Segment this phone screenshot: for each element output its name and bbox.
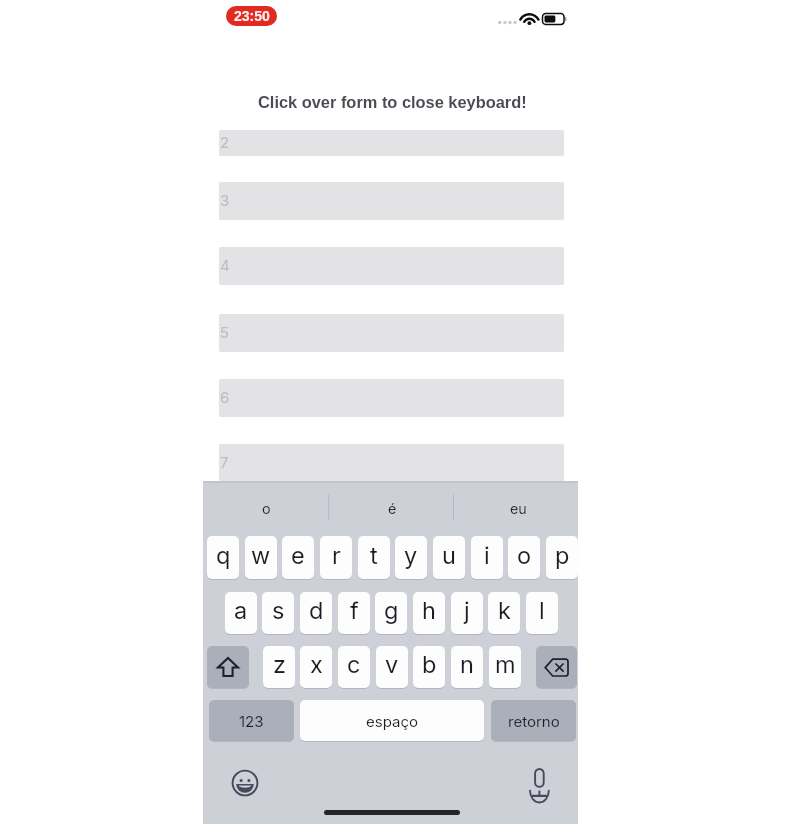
staticText: b [422,650,437,678]
button[interactable]: b [413,646,445,688]
staticText: y [404,541,418,569]
button[interactable]: q [207,536,239,579]
button[interactable]: Backspace [536,646,577,688]
button[interactable]: z [263,646,295,688]
button[interactable]: 123 [209,700,294,741]
staticText: w [251,541,271,569]
staticText: e [291,541,305,569]
button[interactable]: Time 23:50 [226,6,277,26]
staticText: f [350,596,359,624]
button[interactable]: Dictation [530,768,560,798]
button[interactable]: o [226,495,306,521]
button[interactable]: f [338,592,370,634]
button[interactable]: e [282,536,314,579]
staticText: u [442,541,456,569]
staticText: espaço [366,712,418,730]
staticText: i [484,541,490,569]
staticText: o [517,541,532,569]
staticText: é [388,500,397,517]
button[interactable]: j [451,592,483,634]
staticText: l [539,596,545,624]
staticText: n [460,650,474,678]
staticText: v [385,650,399,678]
staticText: retorno [508,712,560,730]
staticText: z [273,650,286,678]
staticText: 5 [220,323,229,341]
staticText: j [464,596,470,624]
button[interactable]: y [395,536,427,579]
button[interactable]: 7 [219,444,564,482]
button[interactable]: o [508,536,540,579]
staticText: k [498,596,511,624]
staticText: d [309,596,324,624]
button[interactable]: g [375,592,407,634]
button[interactable]: l [526,592,558,634]
button[interactable]: é [352,495,432,521]
staticText: Click over form to close keyboard! [258,93,527,111]
button[interactable]: a [225,592,257,634]
button[interactable]: w [245,536,277,579]
button[interactable]: v [376,646,408,688]
staticText: o [262,500,271,517]
staticText: 6 [220,388,230,406]
staticText: g [384,596,399,624]
staticText: 3 [220,191,230,209]
button[interactable]: t [358,536,390,579]
button[interactable]: p [546,536,578,579]
button[interactable]: m [489,646,521,688]
staticText: 4 [220,256,230,274]
staticText: h [422,596,436,624]
button[interactable]: x [300,646,332,688]
button[interactable]: c [338,646,370,688]
staticText: s [272,596,285,624]
button[interactable]: retorno [491,700,576,741]
button[interactable]: k [488,592,520,634]
staticText: 123 [239,712,264,730]
staticText: 7 [220,453,229,471]
staticText: 23:50 [234,8,270,24]
button[interactable]: n [451,646,483,688]
staticText: 2 [220,133,230,151]
button[interactable]: Emoji keyboard [230,768,260,798]
staticText: p [555,541,570,569]
button[interactable]: h [413,592,445,634]
button[interactable]: r [320,536,352,579]
staticText: x [310,650,323,678]
button[interactable]: s [262,592,294,634]
button[interactable]: i [471,536,503,579]
button[interactable]: Shift [207,646,249,688]
staticText: t [370,541,378,569]
staticText: a [234,596,248,624]
button[interactable]: d [300,592,332,634]
button[interactable]: u [433,536,465,579]
staticText: q [216,541,231,569]
staticText: m [495,650,516,678]
button[interactable]: eu [478,495,558,521]
button[interactable]: espaço [300,700,484,741]
staticText: r [332,541,341,569]
staticText: c [347,650,361,678]
staticText: eu [510,500,527,517]
